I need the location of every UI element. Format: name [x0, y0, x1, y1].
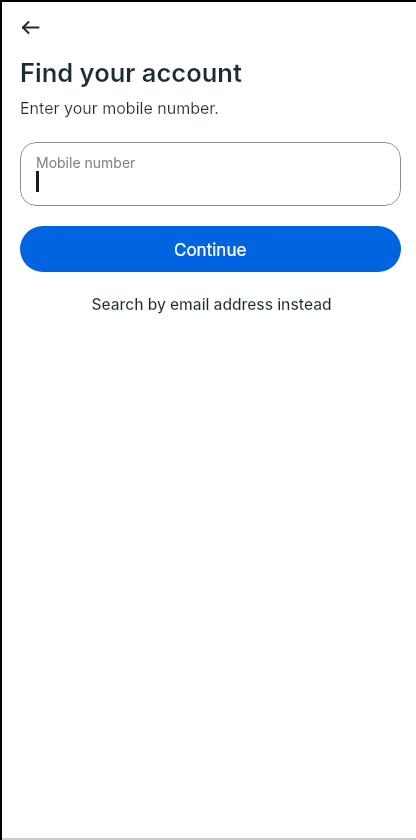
staticText: Mobile number — [36, 154, 136, 171]
staticText: Enter your mobile number. — [20, 98, 219, 117]
staticText: Continue — [174, 240, 247, 261]
staticText: Find your account — [20, 57, 242, 88]
button[interactable]: Continue — [20, 226, 401, 272]
button[interactable]: Mobile number — [20, 142, 401, 206]
button[interactable]: Search by email address instead — [6, 286, 416, 322]
button[interactable]: Back — [12, 9, 48, 45]
staticText: Search by email address instead — [91, 295, 332, 314]
